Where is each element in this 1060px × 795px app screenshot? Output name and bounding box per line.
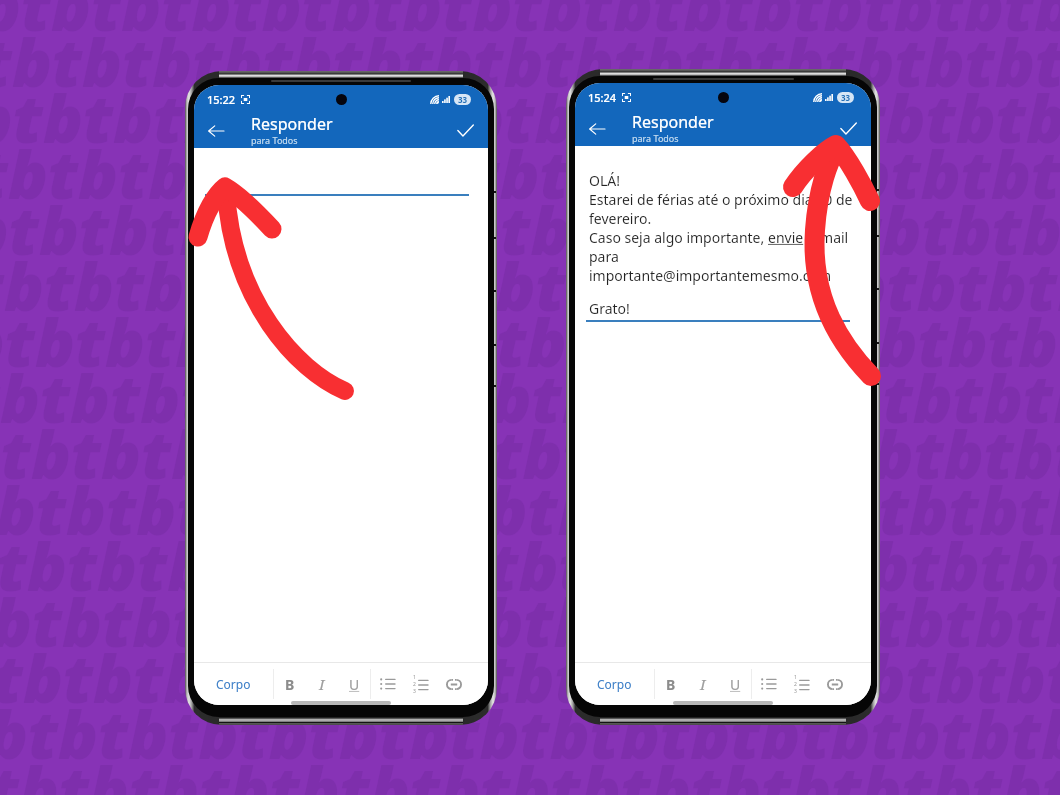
button[interactable]: Link (818, 663, 851, 705)
staticText: btbtbtbtbtbtbtbtbtbtbtbtbtbtbtbtbtbtbtbt… (0, 296, 1060, 386)
staticText: I (700, 674, 706, 694)
staticText: btbtbtbtbtbtbtbtbtbtbtbtbtbtbtbtbtbtbtbt… (0, 520, 1060, 610)
staticText: B (285, 675, 295, 694)
staticText: btbtbtbtbtbtbtbtbtbtbtbtbtbtbtbtbtbtbtbt… (0, 184, 1060, 274)
staticText: I (319, 674, 325, 694)
button[interactable]: Corpo (194, 663, 273, 705)
staticText: 3 (794, 688, 797, 695)
button[interactable]: Lista numerada (404, 663, 437, 705)
button[interactable]: Sublinhado (338, 663, 370, 705)
staticText: Corpo (216, 676, 251, 692)
staticText: Caso seja algo importante, (589, 228, 768, 247)
button[interactable]: Corpo (575, 663, 654, 705)
staticText: fevereiro. (589, 209, 652, 228)
staticText: Responder (251, 113, 333, 135)
button[interactable]: Itálico (687, 663, 719, 705)
staticText: 2 (413, 681, 416, 688)
staticText: 1 (794, 674, 797, 681)
button[interactable]: Enviar (450, 115, 480, 145)
staticText: btbtbtbtbtbtbtbtbtbtbtbtbtbtbtbtbtbtbtbt… (0, 408, 1060, 498)
staticText: Corpo (597, 676, 632, 692)
button[interactable]: Corpo da mensagem (575, 146, 871, 662)
staticText: 15:22 (207, 92, 236, 107)
staticText: Grato! (589, 299, 630, 318)
staticText: OLÁ! (589, 171, 620, 190)
button[interactable]: Corpo da mensagem (194, 148, 488, 662)
staticText: btbtbtbtbtbtbtbtbtbtbtbtbtbtbtbtbtbtbtbt… (0, 352, 1060, 442)
button[interactable]: Itálico (306, 663, 338, 705)
staticText: btbtbtbtbtbtbtbtbtbtbtbtbtbtbtbtbtbtbtbt… (0, 688, 1060, 778)
staticText: B (666, 675, 676, 694)
staticText: btbtbtbtbtbtbtbtbtbtbtbtbtbtbtbtbtbtbtbt… (0, 16, 1060, 106)
staticText: U (730, 675, 741, 694)
staticText: btbtbtbtbtbtbtbtbtbtbtbtbtbtbtbtbtbtbtbt… (0, 744, 1060, 795)
staticText: btbtbtbtbtbtbtbtbtbtbtbtbtbtbtbtbtbtbtbt… (0, 128, 1060, 218)
staticText: 33 (841, 92, 851, 103)
staticText: importante@importantemesmo.com (589, 266, 832, 285)
button[interactable]: Lista numerada (785, 663, 818, 705)
button[interactable]: Lista com marcadores (752, 663, 785, 705)
staticText: 33 (458, 94, 468, 105)
staticText: btbtbtbtbtbtbtbtbtbtbtbtbtbtbtbtbtbtbtbt… (0, 632, 1060, 722)
staticText: 3 (413, 688, 416, 695)
staticText: envie (768, 228, 804, 247)
staticText: 15:24 (588, 90, 617, 105)
button[interactable]: Lista com marcadores (371, 663, 404, 705)
button[interactable]: Enviar (833, 113, 863, 143)
staticText: para Todos (632, 132, 679, 144)
button[interactable]: Sublinhado (719, 663, 751, 705)
staticText: 1 (413, 674, 416, 681)
staticText: btbtbtbtbtbtbtbtbtbtbtbtbtbtbtbtbtbtbtbt… (0, 576, 1060, 666)
button[interactable]: Link (437, 663, 470, 705)
staticText: 2 (794, 681, 797, 688)
button[interactable]: Negrito (274, 663, 306, 705)
staticText: U (349, 675, 360, 694)
staticText: Responder (632, 111, 714, 133)
button[interactable]: Voltar (202, 117, 229, 144)
button[interactable]: Voltar (583, 115, 610, 142)
button[interactable]: Negrito (655, 663, 687, 705)
staticText: btbtbtbtbtbtbtbtbtbtbtbtbtbtbtbtbtbtbtbt… (0, 72, 1060, 162)
staticText: para Todos (251, 134, 298, 146)
staticText: btbtbtbtbtbtbtbtbtbtbtbtbtbtbtbtbtbtbtbt… (0, 0, 1060, 50)
staticText: btbtbtbtbtbtbtbtbtbtbtbtbtbtbtbtbtbtbtbt… (0, 464, 1060, 554)
staticText: e-mail (804, 228, 849, 247)
staticText: para (589, 247, 619, 266)
staticText: btbtbtbtbtbtbtbtbtbtbtbtbtbtbtbtbtbtbtbt… (0, 240, 1060, 330)
staticText: Estarei de férias até o próximo dia 10 d… (589, 190, 853, 209)
